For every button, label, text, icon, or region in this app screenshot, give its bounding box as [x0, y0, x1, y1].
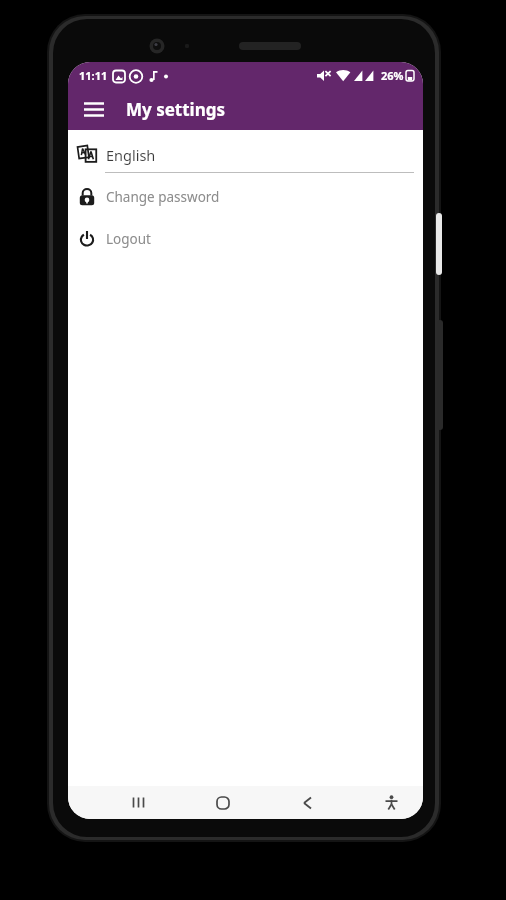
button[interactable]: Recent apps [116, 786, 160, 819]
staticText: My settings [126, 98, 226, 121]
button[interactable]: Open navigation menu [76, 91, 112, 127]
button[interactable]: Home [201, 786, 245, 819]
staticText: 26% [381, 68, 404, 83]
button[interactable]: Back [285, 786, 329, 819]
button[interactable]: English [68, 130, 423, 176]
button[interactable]: Logout [68, 218, 423, 260]
staticText: Change password [106, 188, 220, 206]
button[interactable]: Accessibility [369, 786, 413, 819]
button[interactable]: Change password [68, 176, 423, 218]
staticText: 11:11 [79, 68, 108, 83]
staticText: Logout [106, 230, 151, 248]
staticText: English [106, 145, 156, 165]
